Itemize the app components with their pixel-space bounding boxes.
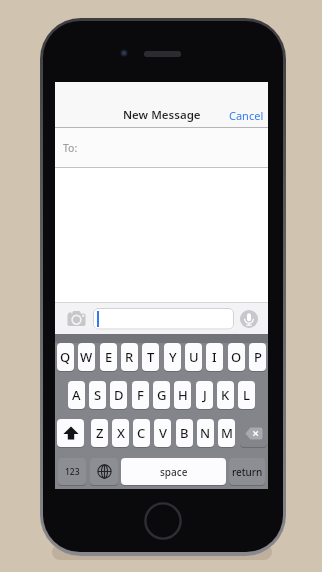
button[interactable]: 123 bbox=[58, 458, 86, 485]
staticText: T bbox=[147, 348, 155, 366]
staticText: M bbox=[221, 424, 233, 442]
staticText: X bbox=[117, 424, 125, 442]
button[interactable]: M bbox=[218, 419, 235, 447]
button[interactable] bbox=[93, 308, 234, 330]
button[interactable]: C bbox=[133, 419, 150, 447]
staticText: New Message bbox=[123, 107, 201, 123]
staticText: E bbox=[105, 348, 113, 366]
staticText: F bbox=[137, 386, 144, 404]
button[interactable]: L bbox=[238, 381, 255, 409]
button[interactable]: D bbox=[110, 381, 127, 409]
button[interactable]: A bbox=[68, 381, 85, 409]
staticText: A bbox=[72, 386, 81, 404]
button[interactable]: K bbox=[217, 381, 234, 409]
button[interactable]: S bbox=[89, 381, 106, 409]
button[interactable] bbox=[55, 128, 268, 167]
staticText: Y bbox=[169, 348, 177, 366]
staticText: V bbox=[159, 424, 167, 442]
staticText: H bbox=[178, 386, 188, 404]
button[interactable]: T bbox=[142, 343, 159, 371]
staticText: C bbox=[137, 424, 146, 442]
button[interactable]: Y bbox=[164, 343, 181, 371]
button[interactable]: E bbox=[100, 343, 117, 371]
staticText: K bbox=[221, 386, 230, 404]
button[interactable]: space bbox=[121, 458, 226, 485]
staticText: B bbox=[180, 424, 189, 442]
button[interactable]: Cancel bbox=[220, 104, 264, 126]
staticText: R bbox=[125, 348, 134, 366]
button[interactable]: Q bbox=[57, 343, 74, 371]
button[interactable] bbox=[57, 419, 84, 447]
button[interactable]: J bbox=[196, 381, 213, 409]
staticText: Z bbox=[96, 424, 104, 442]
button[interactable]: F bbox=[132, 381, 149, 409]
staticText: U bbox=[189, 348, 199, 366]
staticText: Q bbox=[60, 348, 71, 366]
button[interactable] bbox=[90, 458, 118, 485]
button[interactable]: O bbox=[228, 343, 245, 371]
button[interactable]: H bbox=[174, 381, 191, 409]
button[interactable]: V bbox=[154, 419, 171, 447]
button[interactable]: Z bbox=[91, 419, 108, 447]
staticText: 123 bbox=[65, 466, 80, 478]
button[interactable]: B bbox=[176, 419, 193, 447]
staticText: D bbox=[114, 386, 124, 404]
button[interactable]: return bbox=[229, 458, 265, 485]
button[interactable]: W bbox=[78, 343, 95, 371]
button[interactable]: I bbox=[206, 343, 223, 371]
button[interactable] bbox=[240, 310, 258, 328]
button[interactable] bbox=[67, 310, 87, 327]
staticText: I bbox=[212, 348, 217, 366]
staticText: L bbox=[243, 386, 250, 404]
staticText: J bbox=[203, 386, 207, 404]
staticText: P bbox=[254, 348, 262, 366]
staticText: G bbox=[157, 386, 167, 404]
staticText: N bbox=[200, 424, 211, 442]
staticText: space bbox=[160, 465, 188, 479]
staticText: O bbox=[231, 348, 242, 366]
button[interactable]: X bbox=[112, 419, 129, 447]
staticText: W bbox=[80, 348, 93, 366]
staticText: To: bbox=[63, 141, 78, 155]
button[interactable] bbox=[240, 419, 267, 447]
staticText: return bbox=[232, 465, 263, 479]
button[interactable]: R bbox=[121, 343, 138, 371]
button[interactable]: P bbox=[249, 343, 266, 371]
staticText: Cancel bbox=[229, 108, 264, 123]
button[interactable]: G bbox=[153, 381, 170, 409]
staticText: S bbox=[94, 386, 102, 404]
button[interactable]: U bbox=[185, 343, 202, 371]
button[interactable]: N bbox=[197, 419, 214, 447]
